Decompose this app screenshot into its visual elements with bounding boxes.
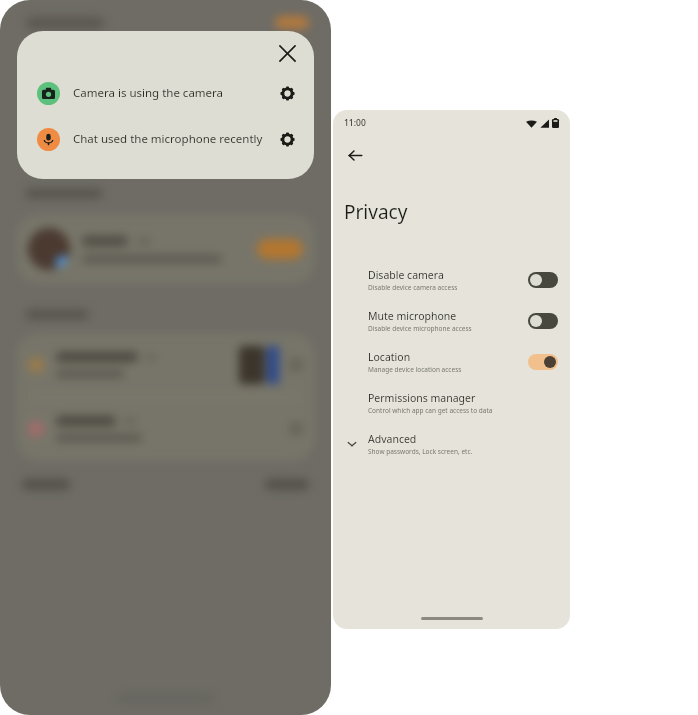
button[interactable] <box>28 398 303 460</box>
button[interactable]: Disable camera <box>344 259 558 300</box>
button[interactable]: Advanced <box>344 423 558 464</box>
staticText: 11:00 <box>344 117 366 129</box>
staticText: Disable device microphone access <box>368 324 472 333</box>
button[interactable] <box>22 479 70 490</box>
button[interactable]: Disable camera toggle, off <box>528 272 558 288</box>
button[interactable]: Location <box>344 341 558 382</box>
button[interactable]: Permissions manager <box>344 382 558 423</box>
button[interactable]: Settings <box>272 124 302 154</box>
button[interactable]: Back <box>341 141 369 169</box>
button[interactable] <box>265 479 309 490</box>
button[interactable]: Location toggle, on <box>528 354 558 370</box>
staticText: Manage device location access <box>368 365 462 374</box>
staticText: Control which app can get access to data <box>368 406 493 415</box>
staticText: Camera is using the camera <box>73 85 224 101</box>
button[interactable]: Mute microphone <box>344 300 558 341</box>
staticText: Disable camera <box>368 268 444 282</box>
button[interactable]: Mute microphone toggle, off <box>528 313 558 329</box>
button[interactable] <box>28 333 303 397</box>
staticText: Location <box>368 350 411 364</box>
button[interactable] <box>16 214 315 284</box>
staticText: Chat used the microphone recently <box>73 131 263 147</box>
button[interactable]: Camera is using the camera <box>37 75 302 111</box>
button[interactable]: Chat used the microphone recently <box>37 121 302 157</box>
staticText: Mute microphone <box>368 309 457 323</box>
staticText: Disable device camera access <box>368 283 458 292</box>
button[interactable]: Settings <box>272 78 302 108</box>
staticText: Advanced <box>368 432 417 446</box>
staticText: Show passwords, Lock screen, etc. <box>368 447 473 456</box>
staticText: Privacy <box>344 199 408 225</box>
staticText: Permissions manager <box>368 391 476 405</box>
button[interactable]: Close <box>270 36 304 70</box>
